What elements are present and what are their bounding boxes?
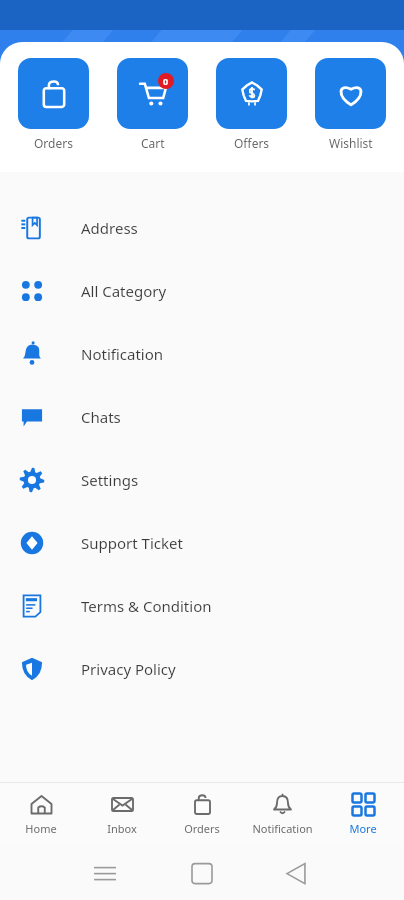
staticText: Orders <box>184 821 220 836</box>
staticText: Inbox <box>107 821 137 836</box>
button[interactable]: Support Ticket <box>0 511 404 574</box>
staticText: All Category <box>81 281 167 301</box>
button[interactable]: Wishlist <box>315 58 386 151</box>
button[interactable]: Notification <box>243 783 321 845</box>
button[interactable]: 0 <box>117 58 188 151</box>
staticText: Address <box>81 218 138 238</box>
staticText: Chats <box>81 407 121 427</box>
button[interactable]: Settings <box>0 448 404 511</box>
staticText: 0 <box>163 75 169 87</box>
staticText: Cart <box>141 135 165 151</box>
staticText: Saif Zakaria <box>262 60 340 79</box>
button[interactable]: Orders <box>18 58 89 151</box>
staticText: More <box>349 821 377 836</box>
staticText: Notification <box>252 821 313 836</box>
staticText: Settings <box>81 470 139 490</box>
button[interactable]: Privacy Policy <box>0 637 404 700</box>
button[interactable]: Home <box>2 783 80 845</box>
button[interactable]: Chats <box>0 385 404 448</box>
staticText: Wishlist <box>329 135 373 151</box>
button[interactable]: Profile <box>350 48 392 90</box>
button[interactable]: All Category <box>0 259 404 322</box>
staticText: Privacy Policy <box>81 659 176 679</box>
staticText: Terms & Condition <box>81 596 212 616</box>
staticText: Support Ticket <box>81 533 183 553</box>
staticText: Notification <box>81 344 164 364</box>
staticText: Home <box>25 821 57 836</box>
staticText: onclick <box>16 66 52 78</box>
button[interactable]: Inbox <box>83 783 161 845</box>
button[interactable]: Notification <box>0 322 404 385</box>
button[interactable]: Offers <box>216 58 287 151</box>
staticText: Orders <box>34 135 73 151</box>
button[interactable]: Orders <box>163 783 241 845</box>
button[interactable]: Terms & Condition <box>0 574 404 637</box>
button[interactable]: Address <box>0 196 404 259</box>
button[interactable]: More <box>324 783 402 845</box>
staticText: Offers <box>234 135 270 151</box>
